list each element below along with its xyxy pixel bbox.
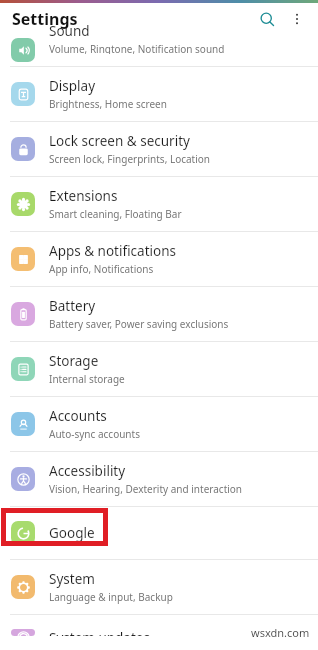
staticText: System — [49, 570, 95, 588]
staticText: Accounts — [49, 407, 107, 425]
staticText: Settings — [12, 8, 78, 30]
staticText: App info, Notifications — [49, 262, 154, 276]
button[interactable]: Extensions — [0, 177, 318, 232]
staticText: Battery saver, Power saving exclusions — [49, 317, 229, 331]
button[interactable]: System updates — [0, 615, 318, 650]
staticText: Extensions — [49, 187, 118, 205]
staticText: Smart cleaning, Floating Bar — [49, 207, 182, 221]
staticText: System updates — [49, 629, 150, 636]
staticText: wsxdn.com — [251, 625, 310, 640]
button[interactable]: Battery — [0, 287, 318, 342]
staticText: Display — [49, 77, 96, 95]
staticText: Internal storage — [49, 372, 125, 386]
button[interactable]: Google — [0, 507, 318, 560]
staticText: Accessibility — [49, 462, 126, 480]
staticText: Sound — [49, 22, 90, 40]
button[interactable]: Sound — [0, 34, 318, 66]
button[interactable]: Display — [0, 67, 318, 122]
staticText: Storage — [49, 352, 99, 370]
button[interactable]: Search — [252, 4, 282, 34]
button[interactable]: Apps & notifications — [0, 232, 318, 287]
staticText: Brightness, Home screen — [49, 97, 167, 111]
button[interactable]: Storage — [0, 342, 318, 397]
staticText: Google — [49, 524, 95, 542]
staticText: Apps & notifications — [49, 242, 176, 260]
staticText: Battery — [49, 297, 96, 315]
staticText: Volume, Ringtone, Notification sound — [49, 42, 225, 54]
button[interactable]: More options — [282, 4, 312, 34]
button[interactable]: Accounts — [0, 397, 318, 452]
staticText: Language & input, Backup — [49, 590, 173, 604]
staticText: Vision, Hearing, Dexterity and interacti… — [49, 482, 243, 496]
staticText: Lock screen & security — [49, 132, 190, 150]
button[interactable]: Lock screen & security — [0, 122, 318, 177]
button[interactable]: Accessibility — [0, 452, 318, 507]
staticText: Auto-sync accounts — [49, 427, 140, 441]
button[interactable]: System — [0, 560, 318, 615]
staticText: Screen lock, Fingerprints, Location — [49, 152, 211, 166]
